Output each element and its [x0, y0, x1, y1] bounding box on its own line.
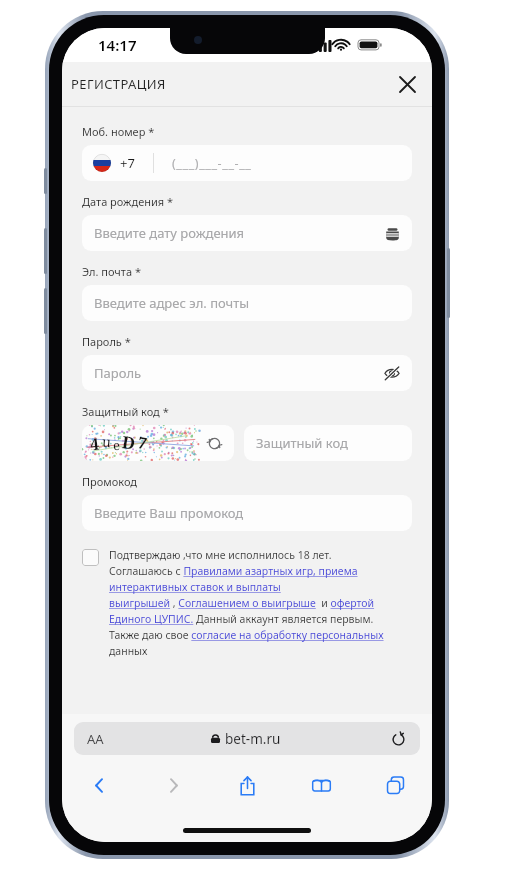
staticText: Введите Ваш промокод: [94, 504, 244, 522]
staticText: Введите адрес эл. почты: [94, 294, 250, 312]
button[interactable]: Поделиться: [210, 765, 284, 805]
button[interactable]: AA: [74, 722, 420, 755]
staticText: bet-m.ru: [225, 730, 281, 748]
staticText: AA: [87, 730, 104, 748]
staticText: Подтверждаю ,что мне исполнилось 18 лет.…: [109, 548, 384, 658]
button[interactable]: Вперёд: [136, 765, 210, 805]
button[interactable]: Обновить защитный код: [82, 425, 234, 461]
staticText: Промокод: [82, 474, 137, 489]
button[interactable]: Подтверждаю ,что мне исполнилось 18 лет.…: [82, 548, 412, 658]
button[interactable]: Назад: [62, 765, 136, 805]
button[interactable]: Закрыть: [392, 69, 422, 99]
staticText: Защитный код: [256, 434, 348, 452]
staticText: 4: [89, 432, 101, 455]
button[interactable]: Введите Ваш промокод: [82, 495, 412, 531]
staticText: 14:17: [98, 35, 137, 55]
button[interactable]: Вкладки: [358, 765, 432, 805]
staticText: Эл. почта *: [82, 264, 141, 279]
staticText: Пароль: [94, 364, 142, 382]
staticText: (___)___-__-__: [172, 155, 252, 172]
staticText: Введите дату рождения: [94, 224, 245, 242]
button[interactable]: +7: [82, 145, 412, 181]
button[interactable]: Защитный код: [244, 425, 412, 461]
button[interactable]: Введите адрес эл. почты: [82, 285, 412, 321]
staticText: +7: [120, 154, 135, 172]
button[interactable]: Пароль: [82, 355, 412, 391]
button[interactable]: Закладки: [284, 765, 358, 805]
staticText: Дата рождения *: [82, 194, 174, 209]
staticText: Защитный код *: [82, 404, 169, 419]
button[interactable]: Обновить: [389, 730, 407, 748]
staticText: 7: [136, 431, 150, 455]
staticText: u: [101, 432, 112, 451]
staticText: Пароль *: [82, 334, 131, 349]
staticText: D: [120, 430, 138, 455]
staticText: Моб. номер *: [82, 124, 155, 139]
staticText: e: [112, 436, 120, 454]
button[interactable]: Введите дату рождения: [82, 215, 412, 251]
staticText: РЕГИСТРАЦИЯ: [71, 75, 166, 93]
